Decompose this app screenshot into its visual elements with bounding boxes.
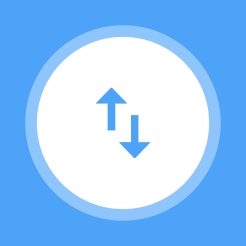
button[interactable]: Transfer (25, 25, 221, 221)
